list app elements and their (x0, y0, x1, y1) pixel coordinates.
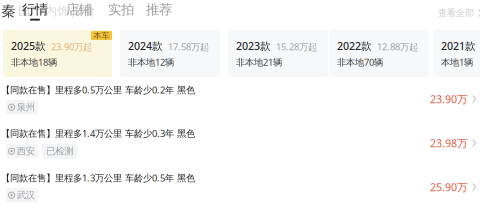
staticText: 2025款 (11, 39, 46, 53)
staticText: 推荐 (146, 1, 172, 18)
staticText: 【同款在售】里程多1.4万公里 车龄少0.3年 黑色 (1, 127, 195, 139)
staticText: 武汉 (17, 189, 35, 201)
button[interactable]: 【同款在售】里程多1.3万公里 车龄少0.5年 黑色 (0, 165, 480, 209)
staticText: 实拍 (108, 1, 134, 18)
staticText: 15.28万起 (276, 40, 317, 53)
button[interactable]: 【同款在售】里程多1.4万公里 车龄少0.3年 黑色 (0, 121, 480, 165)
button[interactable]: 2021款 (433, 30, 480, 77)
button[interactable]: 2023款 (228, 30, 328, 77)
staticText: 本地1辆 (441, 56, 473, 68)
staticText: 2024款 (128, 39, 163, 53)
staticText: 2021款 (441, 39, 476, 53)
staticText: 已检测 (46, 145, 73, 157)
staticText: 2022款 (337, 39, 372, 53)
button[interactable]: 2025款 (3, 30, 112, 77)
staticText: 行情 (22, 1, 48, 18)
button[interactable]: 实拍 (107, 0, 135, 22)
button[interactable]: 行情 (21, 0, 49, 22)
button[interactable]: 店铺 (65, 0, 93, 22)
staticText: 非本地18辆 (11, 56, 57, 68)
staticText: 内饰 (45, 4, 69, 18)
staticText: 【同款在售】里程多1.3万公里 车龄少0.5年 黑色 (1, 172, 195, 184)
staticText: 非本地12辆 (128, 56, 174, 68)
button[interactable]: 推荐 (145, 0, 173, 22)
staticText: 25.90万 (430, 180, 468, 194)
staticText: 查看全部 (438, 7, 474, 19)
staticText: 秦 (1, 2, 16, 20)
staticText: 2023款 (236, 39, 271, 53)
staticText: 23.98万 (430, 136, 468, 150)
button[interactable]: 2022款 (329, 30, 429, 77)
staticText: 17.58万起 (168, 40, 209, 53)
staticText: 23.90万起 (51, 40, 92, 53)
button[interactable]: 2024款 (120, 30, 220, 77)
button[interactable]: 【同款在售】里程多0.5万公里 车龄少0.2年 黑色 (0, 77, 480, 121)
staticText: 西安 (17, 145, 35, 157)
staticText: 本车 (93, 31, 109, 40)
staticText: 非本地70辆 (337, 56, 383, 68)
button[interactable]: 查看全部 (434, 0, 480, 22)
staticText: 23.90万 (430, 92, 468, 106)
staticText: 国产 (18, 4, 42, 18)
staticText: 报价 (71, 4, 95, 18)
staticText: 12.88万起 (377, 40, 418, 53)
staticText: 店铺 (66, 1, 92, 18)
staticText: 【同款在售】里程多0.5万公里 车龄少0.2年 黑色 (1, 84, 195, 96)
staticText: 非本地21辆 (236, 56, 282, 68)
staticText: 泉州 (17, 101, 35, 113)
